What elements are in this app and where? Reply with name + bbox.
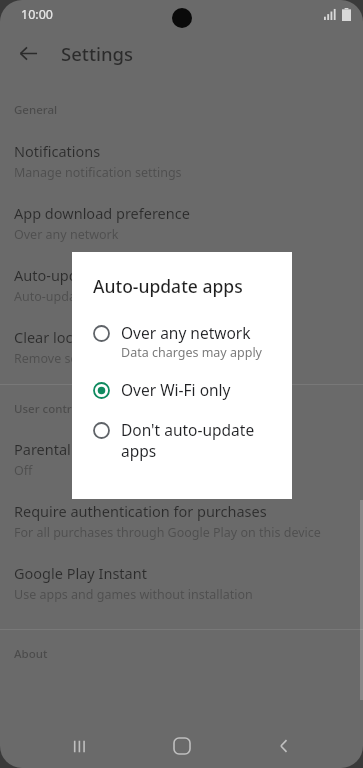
staticText: Remove searches from this device xyxy=(14,350,213,367)
staticText: Google Play Instant xyxy=(14,563,147,583)
staticText: For all purchases through Google Play on… xyxy=(14,524,321,541)
button[interactable]: Over Wi-Fi only xyxy=(72,375,292,404)
staticText: 10:00 xyxy=(21,6,53,23)
button[interactable]: Back xyxy=(260,724,308,768)
button[interactable]: Auto-update apps xyxy=(0,265,363,305)
staticText: Require authentication for purchases xyxy=(14,501,267,521)
staticText: Don't auto-update apps xyxy=(121,419,278,461)
button[interactable]: Parental controls xyxy=(0,439,363,479)
staticText: Use apps and games without installation xyxy=(14,586,253,603)
staticText: Auto-update apps over Wi-Fi only xyxy=(14,288,209,305)
staticText: Over Wi-Fi only xyxy=(121,379,231,400)
staticText: Auto-update apps xyxy=(14,265,136,285)
staticText: About xyxy=(14,646,48,662)
staticText: Parental controls xyxy=(14,439,130,459)
button[interactable]: Clear local search history xyxy=(0,327,363,367)
staticText: Data charges may apply xyxy=(121,344,262,361)
button[interactable]: App download preference xyxy=(0,203,363,243)
staticText: Notifications xyxy=(14,141,101,161)
staticText: Over any network xyxy=(121,322,251,343)
staticText: User controls xyxy=(14,401,88,417)
button[interactable]: Home xyxy=(158,724,206,768)
button[interactable]: Google Play Instant xyxy=(0,563,363,603)
button[interactable]: Recent apps xyxy=(55,724,103,768)
button[interactable]: Require authentication for purchases xyxy=(0,501,363,541)
button[interactable]: Don't auto-update apps xyxy=(72,415,292,465)
button[interactable]: Over any network xyxy=(72,318,292,365)
staticText: App download preference xyxy=(14,203,190,223)
button[interactable]: Back xyxy=(8,33,48,73)
staticText: Off xyxy=(14,462,33,479)
staticText: Clear local search history xyxy=(14,327,184,347)
staticText: General xyxy=(14,102,58,118)
staticText: Auto-update apps xyxy=(93,274,243,298)
staticText: Over any network xyxy=(14,226,119,243)
staticText: Manage notification settings xyxy=(14,164,182,181)
staticText: Settings xyxy=(61,41,134,66)
button[interactable]: Notifications xyxy=(0,141,363,181)
